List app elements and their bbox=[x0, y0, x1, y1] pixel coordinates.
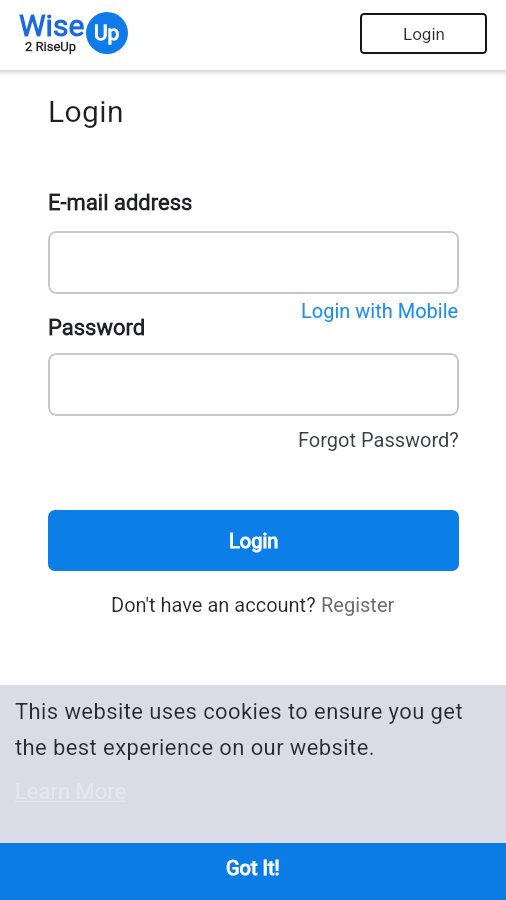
staticText: Password bbox=[48, 315, 146, 341]
button[interactable] bbox=[48, 353, 459, 416]
button[interactable]: Login bbox=[360, 13, 487, 54]
staticText: 2 RiseUp bbox=[25, 39, 77, 54]
staticText: E-mail address bbox=[48, 190, 193, 216]
button[interactable] bbox=[48, 231, 459, 294]
staticText: Login bbox=[229, 529, 279, 552]
button[interactable]: Register bbox=[321, 593, 395, 616]
staticText: Don't have an account? bbox=[111, 593, 321, 616]
staticText: Login bbox=[403, 24, 445, 44]
button[interactable]: Forgot Password? bbox=[298, 428, 459, 451]
button[interactable]: Login bbox=[48, 510, 459, 571]
staticText: Wise bbox=[19, 8, 85, 43]
staticText: Login bbox=[48, 94, 124, 129]
staticText: Up bbox=[94, 21, 120, 46]
button[interactable]: Login with Mobile bbox=[301, 299, 459, 322]
staticText: the best experience on our website. bbox=[15, 735, 375, 761]
staticText: This website uses cookies to ensure you … bbox=[15, 699, 463, 725]
staticText: Got It! bbox=[226, 856, 280, 879]
button[interactable]: Learn More bbox=[15, 779, 127, 805]
button[interactable]: Got It! bbox=[0, 843, 506, 900]
